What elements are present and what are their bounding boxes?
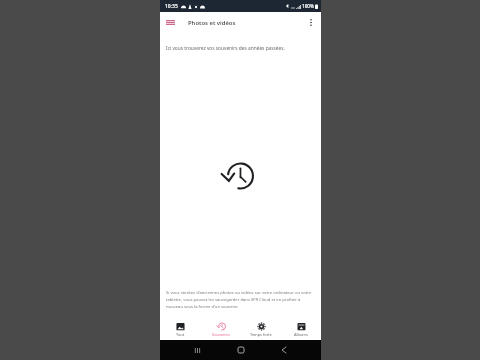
staticText: Ici vous trouverez vos souvenirs des ann… <box>166 45 285 52</box>
button[interactable]: Tout <box>160 322 201 337</box>
button[interactable]: Albums <box>281 322 321 337</box>
staticText: Albums <box>294 332 308 337</box>
staticText: Temps forts <box>250 332 272 337</box>
staticText: Photos et vidéos <box>188 19 236 27</box>
staticText: 10:35 <box>165 3 178 10</box>
staticText: Si vous stockez d'anciennes photos ou vi… <box>166 290 318 309</box>
button[interactable]: Souvenirs <box>201 322 241 337</box>
button[interactable]: Recent apps <box>190 343 204 357</box>
button[interactable]: Home <box>234 343 248 357</box>
button[interactable]: Temps forts <box>241 322 281 337</box>
button[interactable]: Back <box>277 343 291 357</box>
button[interactable]: Menu <box>162 16 176 30</box>
button[interactable]: More options <box>304 16 318 30</box>
staticText: Tout <box>176 332 185 337</box>
staticText: Souvenirs <box>212 332 230 337</box>
staticText: 100% <box>302 3 314 9</box>
